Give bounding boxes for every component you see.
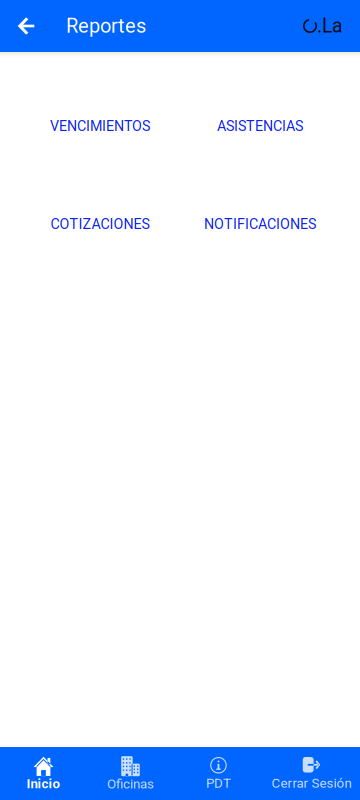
staticText: .La (317, 15, 343, 37)
button[interactable]: COTIZACIONES (20, 175, 180, 273)
button[interactable]: Inicio (0, 747, 87, 800)
staticText: VENCIMIENTOS (50, 118, 150, 134)
staticText: ASISTENCIAS (217, 118, 303, 134)
staticText: COTIZACIONES (50, 216, 149, 232)
button[interactable]: Back (8, 4, 44, 48)
staticText: Cerrar Sesión (271, 775, 351, 791)
button[interactable]: Oficinas (87, 747, 174, 800)
staticText: Reportes (66, 14, 146, 38)
button[interactable]: PDT (174, 747, 263, 800)
button[interactable]: NOTIFICACIONES (180, 175, 340, 273)
staticText: PDT (206, 775, 231, 791)
button[interactable]: VENCIMIENTOS (20, 77, 180, 175)
staticText: Oficinas (107, 776, 154, 792)
button[interactable]: Cerrar Sesión (263, 747, 360, 800)
button[interactable]: ASISTENCIAS (180, 77, 340, 175)
staticText: Inicio (26, 776, 60, 791)
button[interactable]: O.La (298, 5, 348, 47)
staticText: NOTIFICACIONES (204, 216, 316, 232)
